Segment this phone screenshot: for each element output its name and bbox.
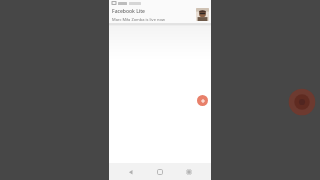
staticText: Marc Miła Zomba is live now [112, 17, 165, 22]
staticText: Facebook Lite [112, 8, 145, 15]
button[interactable]: Compose [197, 95, 208, 106]
button[interactable]: Facebook Lite [109, 6, 211, 23]
button[interactable]: Back [124, 165, 138, 179]
button[interactable]: Home [153, 165, 167, 179]
button[interactable]: Recents [182, 165, 196, 179]
